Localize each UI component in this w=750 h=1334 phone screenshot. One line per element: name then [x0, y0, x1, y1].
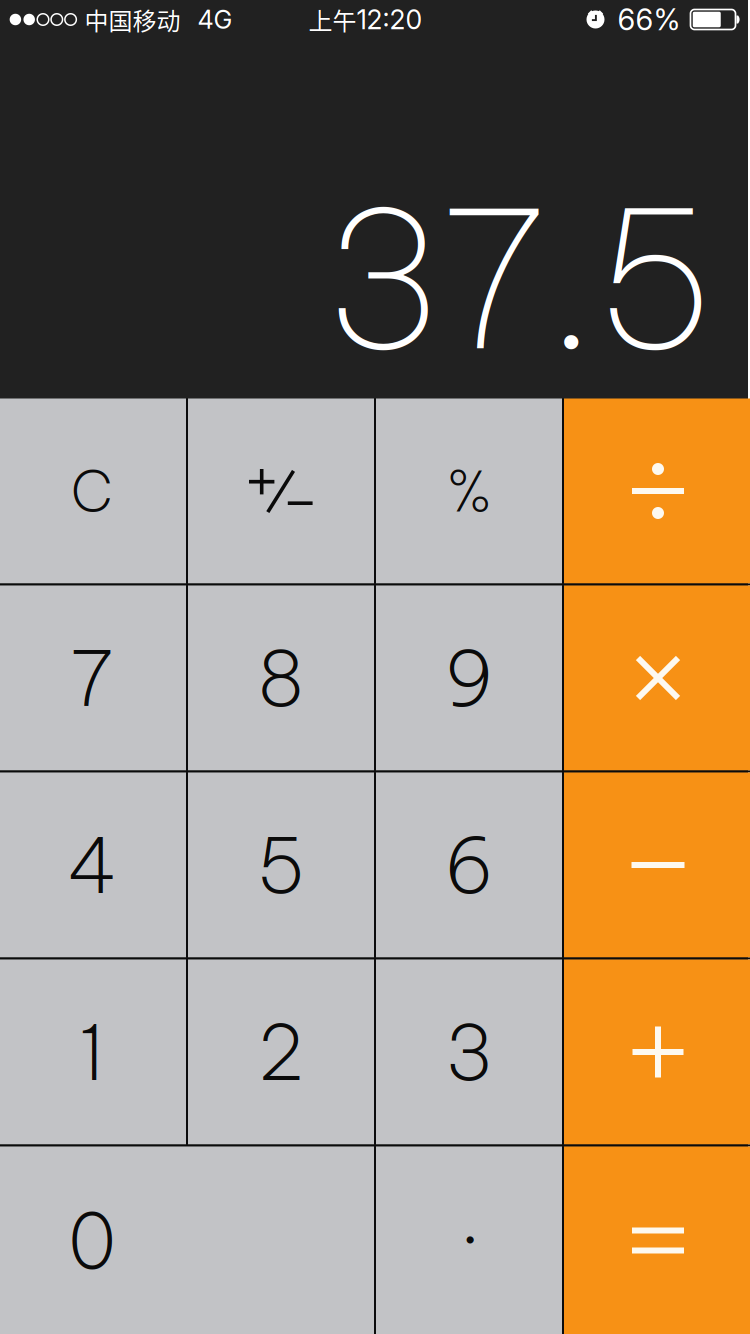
staticText: 3 — [445, 1004, 493, 1100]
button[interactable]: 7 — [0, 585, 186, 770]
button[interactable]: 5 — [188, 772, 374, 957]
staticText: 37.5 — [324, 159, 716, 398]
staticText: 12:20 — [356, 3, 422, 36]
button[interactable]: · — [376, 1146, 562, 1334]
staticText: C — [70, 456, 113, 526]
button[interactable]: 6 — [376, 772, 562, 957]
staticText: 7 — [70, 630, 114, 726]
staticText: 中国移动 — [84, 2, 180, 37]
button[interactable]: Multiply — [564, 585, 750, 770]
button[interactable]: 9 — [376, 585, 562, 770]
staticText: 4G — [197, 4, 232, 35]
button[interactable]: Plus — [564, 959, 750, 1144]
button[interactable]: 1 — [0, 959, 186, 1144]
staticText: 6 — [444, 817, 494, 913]
button[interactable]: Divide — [564, 398, 750, 583]
staticText: · — [459, 1192, 478, 1288]
staticText: 上午 — [308, 2, 356, 37]
staticText: 0 — [68, 1192, 116, 1288]
button[interactable]: Plus Minus — [188, 398, 374, 583]
button[interactable]: 3 — [376, 959, 562, 1144]
staticText: % — [447, 456, 491, 526]
staticText: 4 — [67, 817, 116, 913]
staticText: 9 — [444, 630, 494, 726]
staticText: 8 — [257, 630, 305, 726]
staticText: 5 — [256, 817, 306, 913]
button[interactable]: Equals — [564, 1146, 750, 1334]
button[interactable]: Minus — [564, 772, 750, 957]
button[interactable]: % — [376, 398, 562, 583]
button[interactable]: 8 — [188, 585, 374, 770]
staticText: 66% — [617, 2, 680, 37]
staticText: 2 — [258, 1004, 304, 1100]
button[interactable]: 0 — [0, 1146, 374, 1334]
button[interactable]: C — [0, 398, 186, 583]
button[interactable]: 4 — [0, 772, 186, 957]
button[interactable]: 2 — [188, 959, 374, 1144]
staticText: 1 — [79, 1004, 105, 1100]
